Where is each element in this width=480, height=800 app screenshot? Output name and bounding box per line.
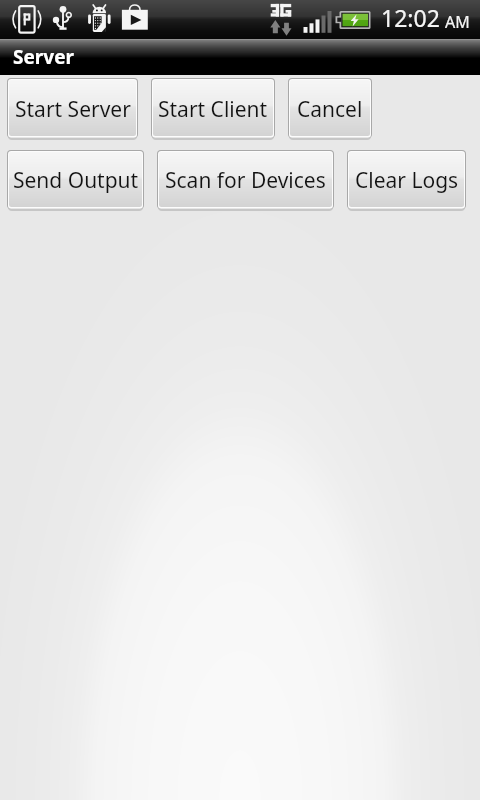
staticText: Scan for Devices — [165, 166, 326, 195]
staticText: Server — [13, 44, 74, 70]
button[interactable]: Start Server — [7, 78, 138, 140]
button[interactable]: Start Client — [151, 78, 275, 140]
staticText: Cancel — [297, 95, 363, 124]
button[interactable]: Clear Logs — [347, 150, 466, 211]
button[interactable]: Scan for Devices — [157, 150, 334, 211]
staticText: Start Client — [158, 95, 268, 124]
staticText: AM — [445, 11, 470, 33]
staticText: Clear Logs — [355, 166, 459, 195]
staticText: Start Server — [15, 95, 131, 124]
button[interactable]: Send Output — [7, 150, 144, 211]
staticText: Send Output — [13, 166, 139, 195]
button[interactable]: Cancel — [288, 78, 372, 140]
staticText: 12:02 — [381, 2, 440, 33]
